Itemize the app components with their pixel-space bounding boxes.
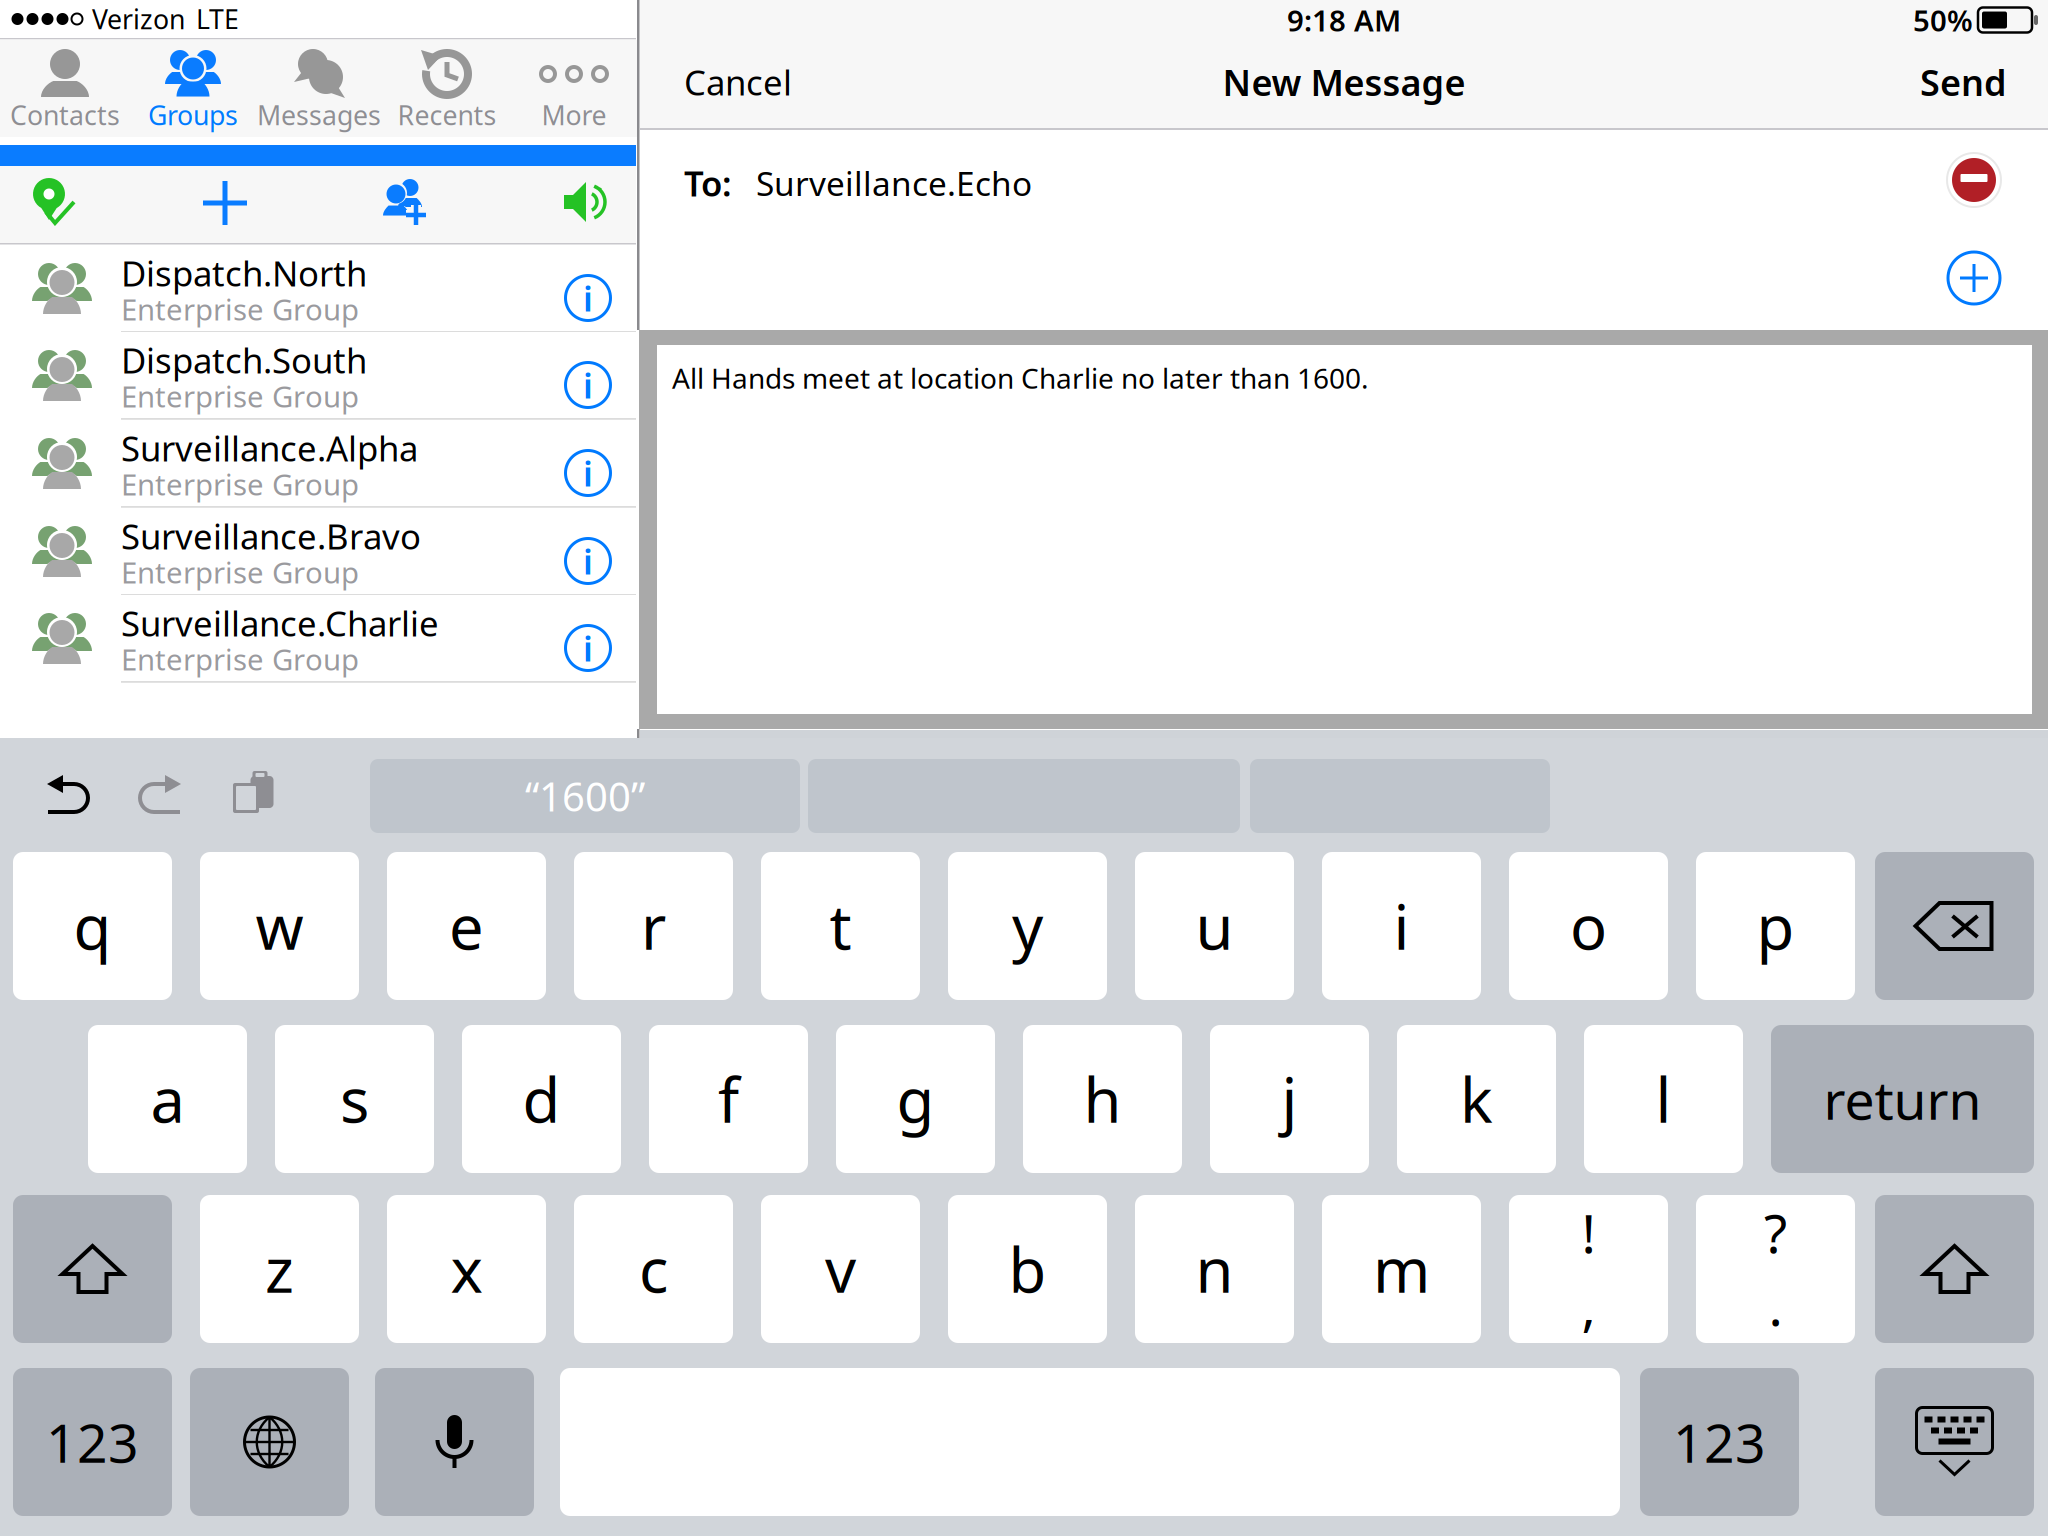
button[interactable]: a (88, 1025, 247, 1173)
button[interactable]: Question mark and period (1696, 1195, 1855, 1343)
staticText: Surveillance.Alpha (121, 425, 418, 471)
button[interactable]: w (200, 852, 359, 1000)
button[interactable]: r (574, 852, 733, 1000)
staticText: g (896, 1058, 934, 1140)
button[interactable]: Delete (1875, 852, 2034, 1000)
staticText: i (583, 362, 593, 408)
staticText: . (1768, 1270, 1782, 1341)
button[interactable]: Paste (228, 768, 276, 816)
button[interactable]: Redo (134, 772, 182, 816)
button[interactable] (0, 595, 636, 683)
button[interactable]: Info (563, 360, 613, 410)
staticText: Dispatch.North (121, 250, 367, 296)
staticText: v (825, 1228, 856, 1310)
staticText: Enterprise Group (121, 376, 359, 415)
staticText: 9:18 AM (1287, 0, 1401, 39)
staticText: w (255, 885, 303, 967)
button[interactable]: b (948, 1195, 1107, 1343)
staticText: i (1393, 885, 1409, 967)
staticText: r (641, 885, 666, 967)
staticText: Enterprise Group (121, 464, 359, 503)
staticText: Contacts (10, 97, 120, 133)
staticText: a (150, 1058, 184, 1140)
button[interactable]: Cancel (684, 56, 904, 108)
button[interactable] (1, 40, 129, 137)
button[interactable]: n (1135, 1195, 1294, 1343)
button[interactable]: return (1771, 1025, 2034, 1173)
button[interactable]: Info (563, 448, 613, 498)
staticText: i (583, 625, 593, 671)
staticText: To: (684, 160, 732, 206)
button[interactable]: Add member (376, 176, 430, 228)
staticText: j (1281, 1058, 1297, 1140)
button[interactable]: p (1696, 852, 1855, 1000)
button[interactable]: z (200, 1195, 359, 1343)
button[interactable]: g (836, 1025, 995, 1173)
button[interactable]: m (1322, 1195, 1481, 1343)
button[interactable]: j (1210, 1025, 1369, 1173)
staticText: f (718, 1058, 739, 1140)
button[interactable]: t (761, 852, 920, 1000)
staticText: Messages (257, 97, 381, 133)
button[interactable]: Info (563, 536, 613, 586)
button[interactable]: Add recipient (1946, 250, 2002, 306)
button[interactable] (255, 40, 383, 137)
button[interactable]: q (13, 852, 172, 1000)
button[interactable]: “1600” (370, 759, 800, 833)
button[interactable]: i (1322, 852, 1481, 1000)
staticText: z (265, 1228, 294, 1310)
button[interactable]: v (761, 1195, 920, 1343)
button[interactable]: Shift (13, 1195, 172, 1343)
button[interactable]: s (275, 1025, 434, 1173)
staticText: k (1460, 1058, 1493, 1140)
button[interactable]: l (1584, 1025, 1743, 1173)
button[interactable]: Speaker (562, 178, 612, 226)
button[interactable]: Exclamation and comma (1509, 1195, 1668, 1343)
button[interactable]: Undo (46, 772, 94, 816)
button[interactable] (383, 40, 511, 137)
button[interactable]: f (649, 1025, 808, 1173)
button[interactable]: d (462, 1025, 621, 1173)
staticText: New Message (1222, 58, 1465, 106)
button[interactable]: k (1397, 1025, 1556, 1173)
staticText: i (583, 538, 593, 584)
staticText: Cancel (684, 59, 792, 105)
button[interactable] (0, 245, 636, 333)
button[interactable] (129, 40, 257, 137)
button[interactable]: x (387, 1195, 546, 1343)
button[interactable] (0, 420, 636, 508)
button[interactable]: e (387, 852, 546, 1000)
button[interactable] (0, 508, 636, 596)
staticText: Surveillance.Bravo (121, 513, 421, 559)
button[interactable] (0, 332, 636, 420)
button[interactable]: Location (30, 176, 78, 230)
staticText: LTE (196, 1, 239, 37)
staticText: e (449, 885, 484, 967)
button[interactable] (510, 40, 638, 137)
button[interactable]: Info (563, 623, 613, 673)
button[interactable]: h (1023, 1025, 1182, 1173)
staticText: Dispatch.South (121, 337, 367, 383)
staticText: return (1823, 1064, 1981, 1134)
button[interactable]: Dismiss keyboard (1875, 1368, 2034, 1516)
button[interactable]: c (574, 1195, 733, 1343)
staticText: Groups (148, 97, 238, 133)
button[interactable]: y (948, 852, 1107, 1000)
button[interactable]: 123 (13, 1368, 172, 1516)
staticText: h (1083, 1058, 1121, 1140)
button[interactable]: Send (1847, 56, 2007, 108)
button[interactable]: Next keyboard (190, 1368, 349, 1516)
button[interactable]: Dictate (375, 1368, 534, 1516)
staticText: q (73, 885, 111, 967)
button[interactable]: Add group (201, 179, 249, 227)
button[interactable]: o (1509, 852, 1668, 1000)
button[interactable]: Shift (1875, 1195, 2034, 1343)
staticText: i (583, 275, 593, 321)
staticText: n (1195, 1228, 1233, 1310)
button[interactable]: 123 (1640, 1368, 1799, 1516)
button[interactable]: u (1135, 852, 1294, 1000)
button[interactable]: Info (563, 273, 613, 323)
